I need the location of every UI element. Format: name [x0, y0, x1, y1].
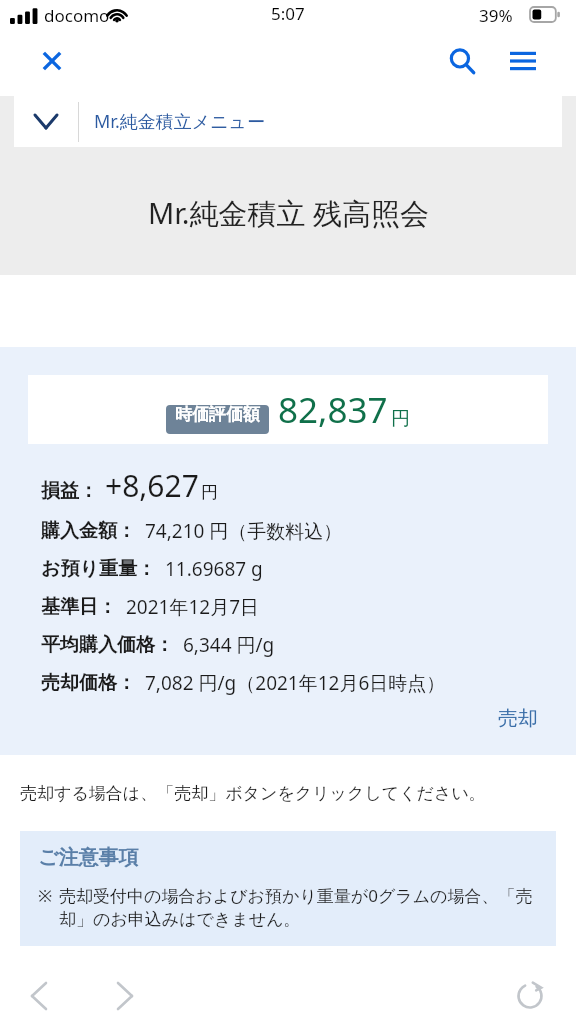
staticText: 売却価格：: [41, 671, 136, 695]
staticText: 82,837: [278, 386, 388, 434]
staticText: 購入金額：: [41, 519, 136, 543]
staticText: 平均購入価格：: [41, 633, 174, 657]
staticText: docomo: [44, 4, 110, 27]
button[interactable]: Mr.純金積立メニュー: [14, 96, 562, 147]
staticText: ご注意事項: [38, 845, 139, 870]
staticText: 7,082 円/g（2021年12月6日時点）: [145, 670, 446, 696]
staticText: 円: [391, 407, 410, 431]
staticText: 2021年12月7日: [126, 594, 260, 620]
staticText: 39%: [479, 4, 513, 27]
staticText: +8,627: [105, 465, 199, 506]
button[interactable]: 売却: [498, 702, 576, 735]
staticText: 売却: [498, 706, 538, 731]
button[interactable]: Menu: [495, 33, 551, 89]
button[interactable]: Reload: [503, 969, 557, 1023]
staticText: 損益：: [41, 479, 98, 503]
staticText: Mr.純金積立 残高照会: [148, 193, 429, 233]
staticText: 基準日：: [41, 595, 117, 619]
staticText: 74,210 円（手数料込）: [145, 518, 343, 544]
staticText: 11.69687 g: [165, 556, 263, 582]
staticText: 時価評価額: [175, 405, 260, 425]
button[interactable]: Close: [24, 33, 80, 89]
staticText: Mr.純金積立メニュー: [94, 109, 265, 134]
staticText: 6,344 円/g: [183, 632, 275, 658]
staticText: 売却する場合は、「売却」ボタンをクリックしてください。: [20, 783, 486, 804]
staticText: 売却受付中の場合およびお預かり重量が0グラムの場合、「売却」のお申込みはできませ…: [59, 884, 542, 930]
staticText: 円: [201, 482, 218, 503]
staticText: ※: [38, 884, 53, 907]
button[interactable]: Back: [12, 969, 66, 1023]
button[interactable]: Search: [434, 33, 490, 89]
button[interactable]: Forward: [98, 969, 152, 1023]
staticText: 5:07: [271, 2, 305, 25]
staticText: お預り重量：: [41, 557, 156, 581]
